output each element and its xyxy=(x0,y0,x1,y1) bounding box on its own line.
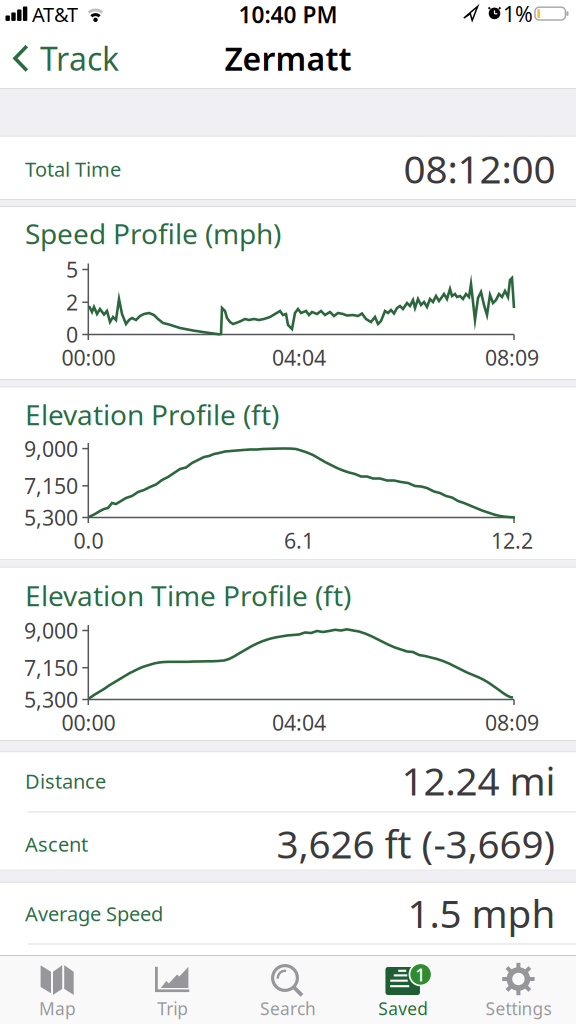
staticText: Elevation Time Profile (ft) xyxy=(25,577,351,614)
staticText: Distance xyxy=(25,768,106,794)
button[interactable]: Map xyxy=(2,960,114,1022)
staticText: 9,000 xyxy=(24,616,78,645)
staticText: 9,000 xyxy=(24,434,78,463)
staticText: 1 xyxy=(415,962,426,987)
button[interactable]: 1 xyxy=(347,960,459,1022)
staticText: Total Time xyxy=(25,156,121,182)
staticText: AT&T xyxy=(32,1,78,27)
staticText: 2 xyxy=(66,288,78,316)
staticText: Trip xyxy=(157,997,188,1020)
staticText: 7,150 xyxy=(24,472,78,500)
staticText: 1% xyxy=(503,0,533,28)
staticText: Ascent xyxy=(25,831,88,857)
staticText: 5,300 xyxy=(24,503,78,532)
staticText: Saved xyxy=(378,997,428,1020)
staticText: Search xyxy=(260,997,316,1020)
staticText: Speed Profile (mph) xyxy=(25,215,281,252)
staticText: 5,300 xyxy=(24,685,78,714)
staticText: 00:00 xyxy=(61,343,115,372)
button[interactable]: Search xyxy=(232,960,344,1022)
staticText: Map xyxy=(39,997,76,1020)
staticText: 10:40 PM xyxy=(238,0,337,29)
staticText: 00:00 xyxy=(61,708,115,737)
staticText: 7,150 xyxy=(24,653,78,682)
staticText: 12.2 xyxy=(491,526,533,555)
staticText: 3,626 ft (-3,669) xyxy=(276,818,555,869)
button[interactable]: Trip xyxy=(117,960,229,1022)
staticText: Average Speed xyxy=(25,900,163,927)
staticText: Zermatt xyxy=(224,37,351,80)
button[interactable]: Back xyxy=(2,35,114,81)
staticText: 08:12:00 xyxy=(403,143,555,194)
staticText: Elevation Profile (ft) xyxy=(25,396,279,433)
staticText: 08:09 xyxy=(485,708,539,737)
staticText: 08:09 xyxy=(485,343,539,372)
staticText: 12.24 mi xyxy=(401,755,555,806)
staticText: Track xyxy=(40,37,119,80)
staticText: Settings xyxy=(485,997,551,1020)
button[interactable]: Settings xyxy=(462,960,574,1022)
staticText: 1.5 mph xyxy=(407,887,555,939)
staticText: 04:04 xyxy=(272,343,326,372)
staticText: 0.0 xyxy=(73,526,103,555)
staticText: 04:04 xyxy=(272,708,326,737)
staticText: 0 xyxy=(66,320,78,349)
staticText: 5 xyxy=(66,255,78,284)
staticText: 6.1 xyxy=(284,526,314,555)
